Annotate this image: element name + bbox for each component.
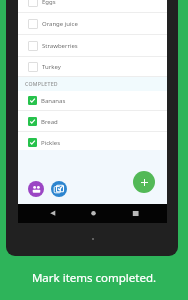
button[interactable]: Bananas — [18, 91, 167, 110]
staticText: Orange juice — [42, 20, 78, 28]
button[interactable]: Eggs — [18, 0, 167, 12]
button[interactable]: Share list — [28, 181, 44, 197]
button[interactable]: Pickles — [18, 132, 167, 152]
button[interactable]: Home — [89, 209, 98, 218]
button[interactable]: Recents — [131, 209, 140, 218]
staticText: Mark items completed. — [0, 270, 188, 286]
staticText: Turkey — [42, 63, 61, 71]
staticText: Strawberries — [42, 42, 78, 50]
button[interactable]: New list — [51, 181, 67, 197]
staticText: Bread — [41, 118, 58, 126]
button[interactable]: Turkey — [18, 57, 167, 76]
button[interactable]: Strawberries — [18, 35, 167, 56]
button[interactable]: Bread — [18, 111, 167, 131]
staticText: COMPLETED — [25, 80, 58, 87]
staticText: Eggs — [42, 0, 56, 6]
staticText: Bananas — [41, 97, 66, 105]
staticText: Pickles — [41, 139, 61, 147]
button[interactable]: Orange juice — [18, 13, 167, 34]
button[interactable]: Back — [48, 209, 57, 218]
button[interactable]: Add item — [133, 171, 155, 193]
